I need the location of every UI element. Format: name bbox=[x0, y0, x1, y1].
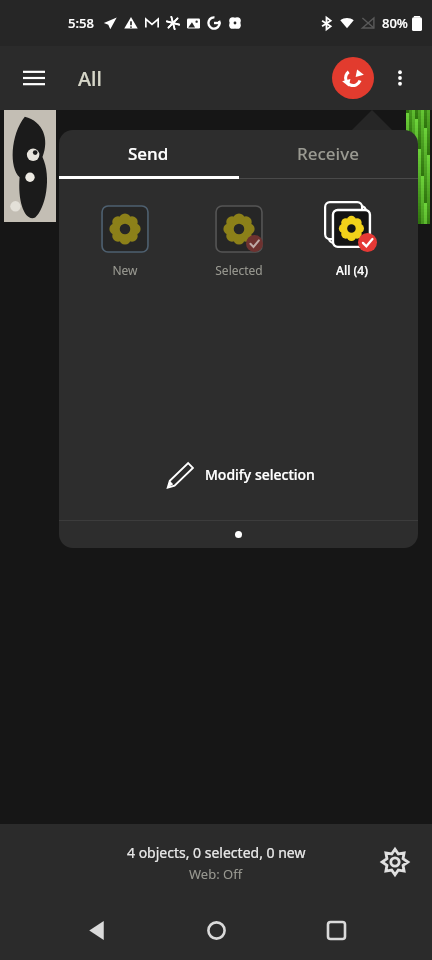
staticText: 4 objects, 0 selected, 0 new bbox=[127, 843, 306, 862]
staticText: Receive bbox=[297, 142, 359, 165]
staticText: Web: Off bbox=[189, 865, 243, 883]
button[interactable] bbox=[4, 110, 56, 222]
staticText: 80% bbox=[382, 14, 408, 32]
button[interactable]: Recent apps bbox=[312, 906, 360, 954]
button[interactable]: Back bbox=[72, 906, 120, 954]
staticText: Modify selection bbox=[205, 465, 315, 484]
button[interactable]: Modify selection bbox=[59, 444, 418, 504]
staticText: New bbox=[112, 262, 138, 278]
button[interactable]: Sync bbox=[332, 57, 374, 99]
staticText: All bbox=[78, 65, 102, 92]
button[interactable]: New bbox=[77, 201, 173, 278]
staticText: Send bbox=[128, 142, 169, 165]
button[interactable]: Receive bbox=[238, 130, 418, 176]
staticText: 5:58 bbox=[68, 14, 94, 32]
button[interactable]: Open navigation menu bbox=[12, 56, 56, 100]
button[interactable] bbox=[406, 110, 428, 222]
staticText: All (4) bbox=[336, 262, 368, 278]
staticText: Selected bbox=[215, 262, 263, 278]
button[interactable]: Selected bbox=[191, 201, 287, 278]
button[interactable]: More options bbox=[380, 58, 420, 98]
button[interactable]: All (4) bbox=[304, 201, 400, 278]
button[interactable]: Settings bbox=[372, 839, 418, 885]
button[interactable]: Home bbox=[192, 906, 240, 954]
button[interactable]: Send bbox=[59, 130, 238, 176]
